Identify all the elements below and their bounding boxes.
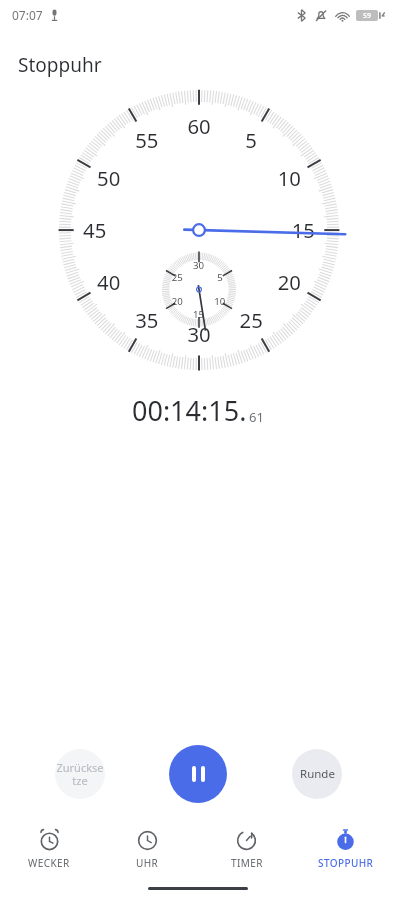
staticText: UHR [136,856,159,870]
staticText: Zurücksetze [55,760,105,788]
button[interactable]: Zurücksetze [55,749,105,799]
staticText: TIMER [231,856,263,870]
button[interactable]: STOPPUHR [296,825,395,873]
staticText: Stoppuhr [18,52,102,78]
staticText: STOPPUHR [318,856,374,870]
button[interactable]: TIMER [197,825,296,873]
button[interactable]: Runde [292,749,342,799]
staticText: WECKER [28,856,70,870]
staticText: 07:07 [12,7,43,23]
button[interactable]: UHR [98,825,197,873]
staticText: Runde [300,766,335,782]
staticText: 61 [249,408,264,426]
staticText: 59 [363,11,372,21]
button[interactable]: Pause [169,745,227,803]
staticText: 00:14:15. [132,392,247,429]
button[interactable]: WECKER [0,825,98,873]
